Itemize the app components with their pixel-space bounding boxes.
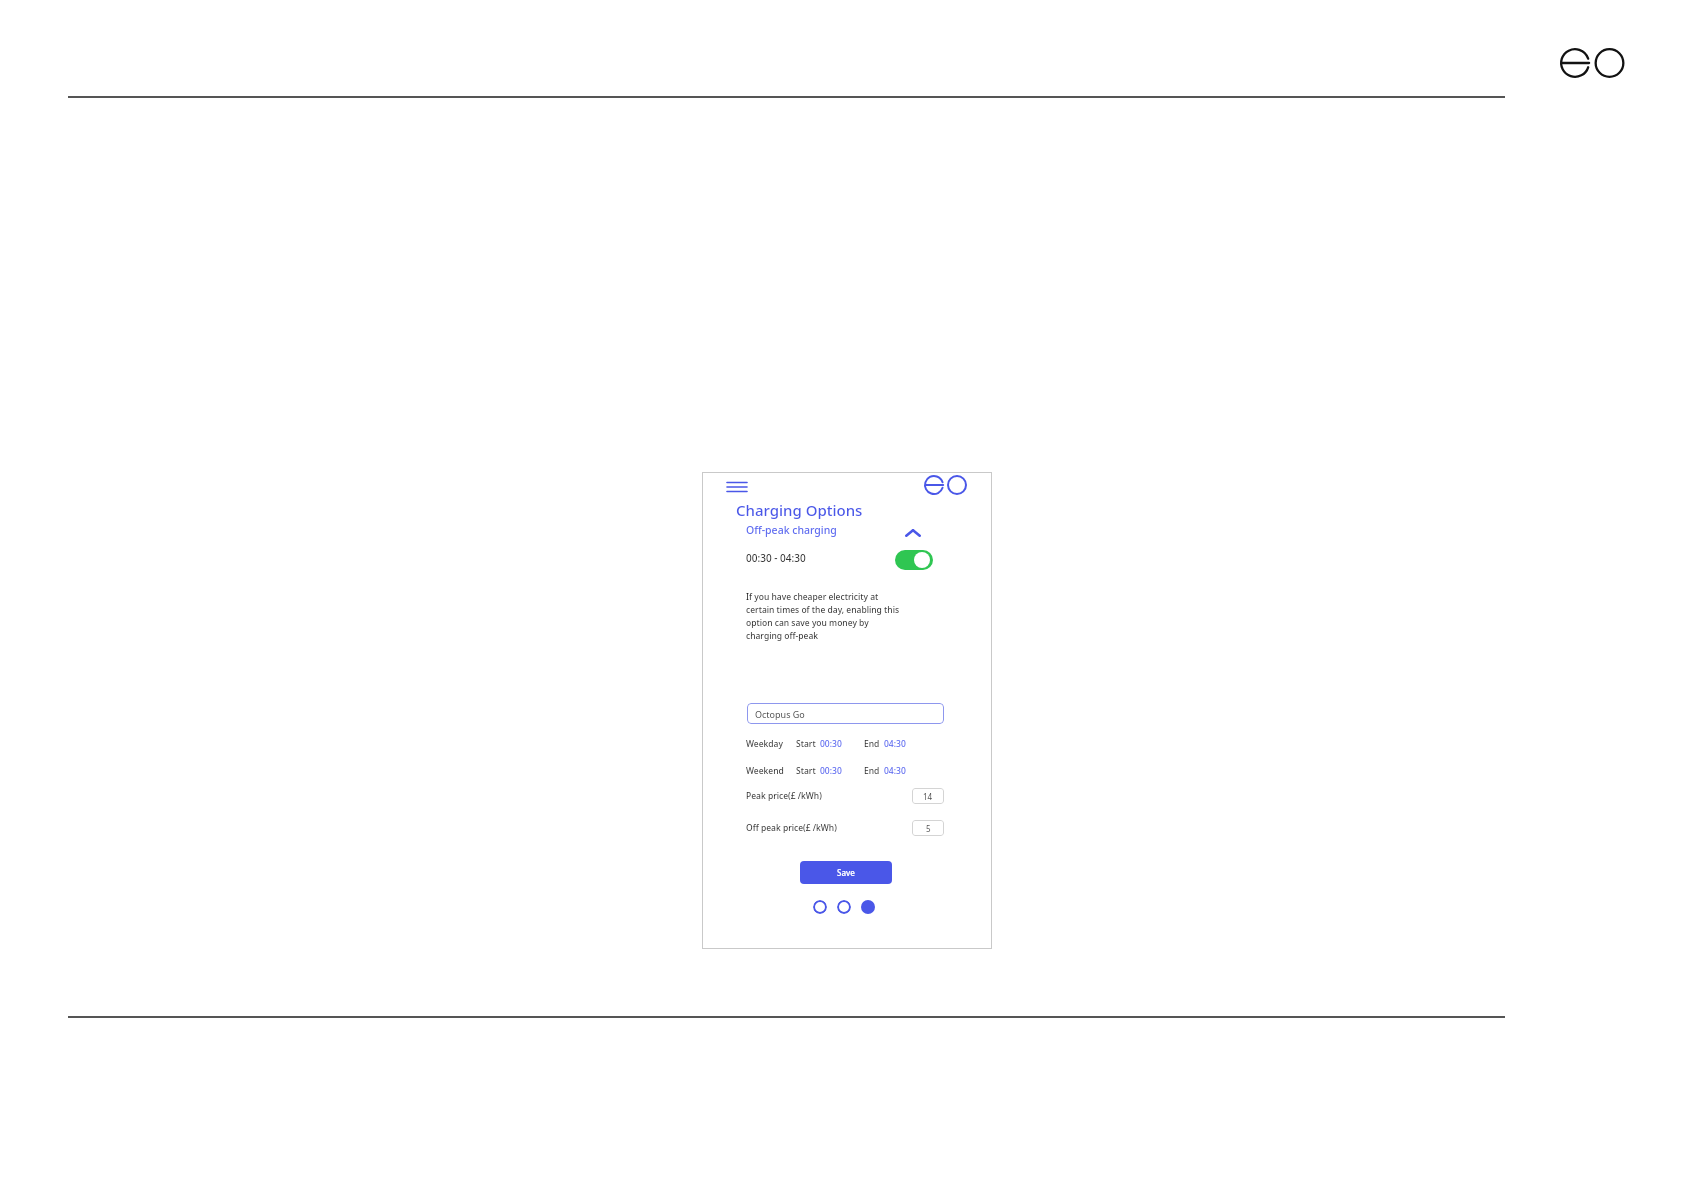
staticText: Start (796, 738, 816, 750)
staticText: Weekend (746, 765, 784, 777)
staticText: End (864, 765, 880, 777)
staticText: 5 (926, 823, 931, 834)
staticText: 00:30 (820, 738, 842, 750)
staticText: Start (796, 765, 816, 777)
staticText: Off peak price(£ /kWh) (746, 822, 837, 834)
button[interactable]: Off-peak charging toggle, on (895, 550, 933, 570)
button[interactable] (861, 900, 875, 914)
button[interactable]: Off-peak charging (746, 523, 837, 537)
staticText: End (864, 738, 880, 750)
staticText: Save (837, 867, 855, 878)
button[interactable]: Save (800, 861, 892, 884)
staticText: Weekday (746, 738, 783, 750)
button[interactable] (813, 900, 827, 914)
button[interactable] (837, 900, 851, 914)
staticText: 04:30 (884, 738, 906, 750)
button[interactable]: 14 (912, 788, 944, 804)
staticText: If you have cheaper electricity at certa… (746, 591, 961, 642)
button[interactable]: Octopus Go (747, 703, 944, 724)
staticText: 04:30 (884, 765, 906, 777)
button[interactable]: Menu (724, 476, 750, 498)
button[interactable]: Collapse section (900, 524, 926, 542)
staticText: 00:30 - 04:30 (746, 551, 806, 565)
staticText: 00:30 (820, 765, 842, 777)
button[interactable]: 5 (912, 820, 944, 836)
staticText: Peak price(£ /kWh) (746, 790, 822, 802)
staticText: Octopus Go (755, 708, 805, 720)
staticText: Charging Options (736, 500, 863, 520)
staticText: 14 (923, 791, 933, 802)
